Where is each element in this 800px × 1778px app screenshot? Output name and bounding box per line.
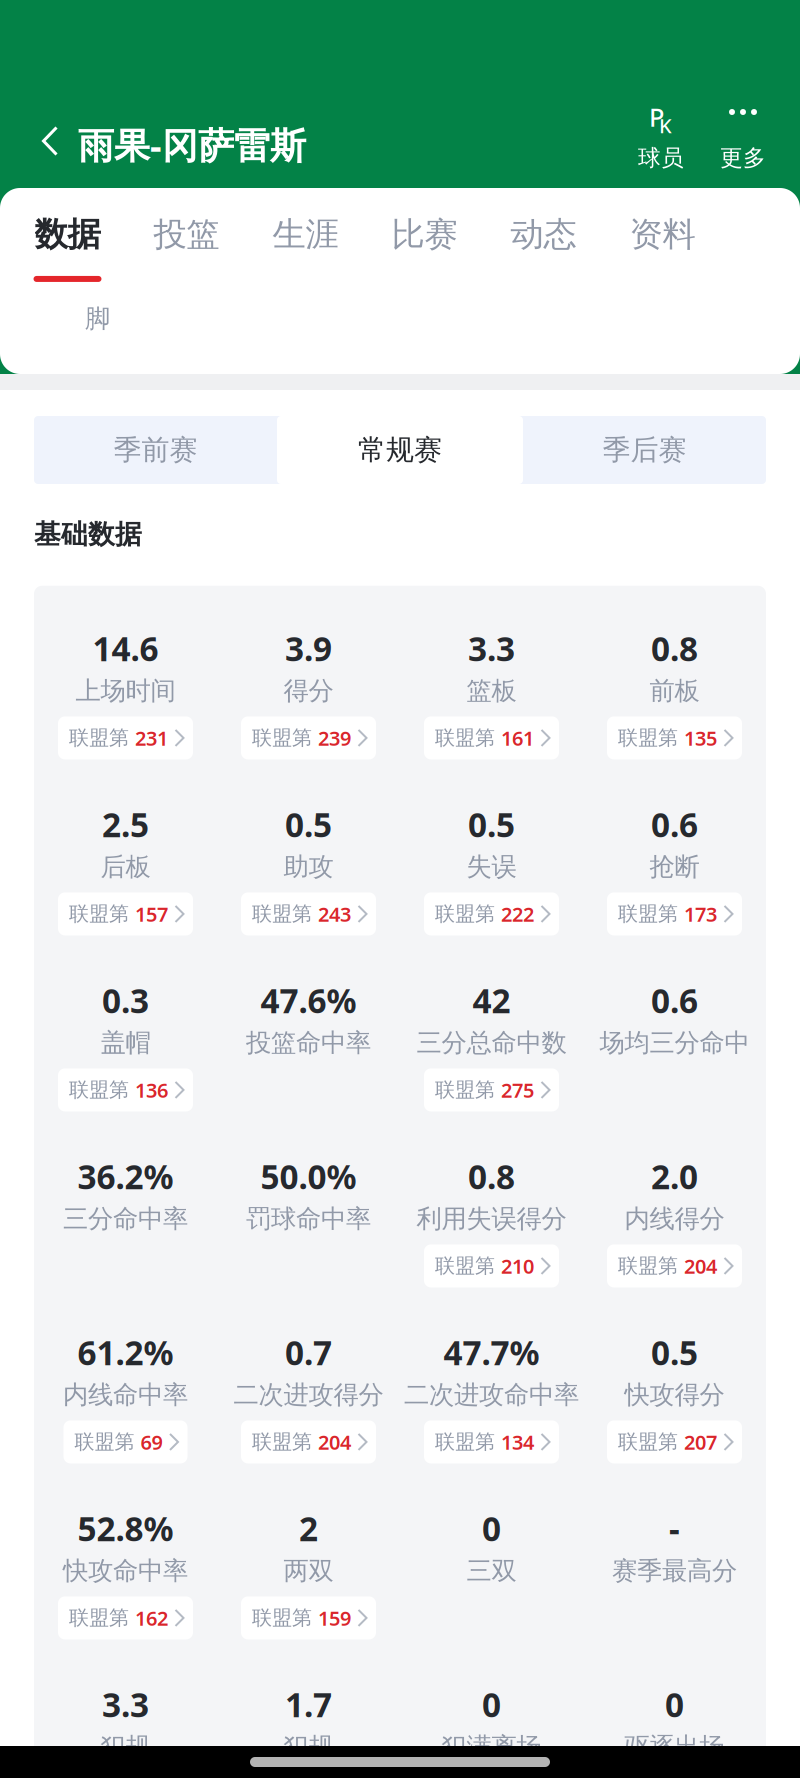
staticText: 联盟第	[74, 1430, 134, 1454]
staticText: 雨果-冈萨雷斯	[78, 121, 306, 169]
staticText: 275	[501, 1077, 534, 1103]
staticText: 161	[501, 725, 534, 751]
staticText: 投篮	[153, 214, 219, 255]
staticText: 联盟第	[618, 726, 678, 750]
staticText: P	[649, 100, 664, 134]
staticText: 42	[472, 978, 510, 1022]
button[interactable]: 联盟第	[424, 716, 559, 759]
button[interactable]: 生涯	[246, 188, 365, 281]
button[interactable]: 联盟第	[607, 1244, 742, 1287]
staticText: 36.2%	[77, 1154, 173, 1198]
staticText: 0.3	[102, 978, 149, 1022]
staticText: 134	[501, 1429, 534, 1455]
button[interactable]: 投篮	[127, 188, 246, 281]
staticText: 3.3	[102, 1682, 149, 1726]
button[interactable]: 联盟第	[58, 1596, 193, 1639]
button[interactable]: 联盟第	[241, 1420, 376, 1463]
staticText: 239	[318, 725, 351, 751]
staticText: 利用失误得分	[416, 1203, 566, 1234]
staticText: 快攻得分	[624, 1379, 724, 1410]
staticText: 3.9	[285, 626, 332, 670]
staticText: 三分总命中数	[416, 1027, 566, 1058]
staticText: 失误	[466, 851, 516, 882]
button[interactable]: 联盟第	[58, 716, 193, 759]
button[interactable]: Back	[0, 100, 78, 188]
staticText: 快攻命中率	[63, 1555, 188, 1586]
staticText: 3.3	[468, 626, 515, 670]
button[interactable]: 联盟第	[607, 716, 742, 759]
staticText: 222	[501, 901, 534, 927]
staticText: 0	[482, 1682, 501, 1726]
staticText: 联盟第	[252, 726, 312, 750]
staticText: 前板	[649, 675, 699, 706]
staticText: 159	[318, 1605, 351, 1631]
staticText: 204	[318, 1429, 351, 1455]
button[interactable]: 联盟第	[424, 892, 559, 935]
staticText: 常规赛	[358, 433, 442, 467]
staticText: 1.7	[285, 1682, 332, 1726]
staticText: 生涯	[272, 214, 338, 255]
staticText: 联盟第	[435, 1430, 495, 1454]
staticText: 二次进攻命中率	[404, 1379, 579, 1410]
button[interactable]: 联盟第	[58, 892, 193, 935]
staticText: 赛季最高分	[612, 1555, 737, 1586]
staticText: 2.5	[102, 802, 149, 846]
staticText: 基础数据	[34, 518, 142, 551]
staticText: 脚	[85, 303, 110, 334]
button[interactable]: 季后赛	[523, 418, 766, 482]
button[interactable]: 资料	[603, 188, 722, 281]
staticText: 联盟第	[69, 1078, 129, 1102]
staticText: 243	[318, 901, 351, 927]
staticText: 47.6%	[260, 978, 356, 1022]
staticText: 231	[135, 725, 168, 751]
button[interactable]: 数据	[8, 188, 127, 281]
staticText: 资料	[629, 214, 695, 255]
staticText: 两双	[283, 1555, 333, 1586]
staticText: 0.5	[651, 1330, 698, 1374]
staticText: 2	[299, 1506, 318, 1550]
staticText: 0.8	[468, 1154, 515, 1198]
button[interactable]: 常规赛	[277, 416, 523, 484]
staticText: 0	[665, 1682, 684, 1726]
staticText: 210	[501, 1253, 534, 1279]
staticText: 三双	[466, 1555, 516, 1586]
staticText: 联盟第	[252, 1430, 312, 1454]
button[interactable]: 联盟第	[58, 1068, 193, 1111]
staticText: 162	[135, 1605, 168, 1631]
button[interactable]: 联盟第	[241, 1596, 376, 1639]
button[interactable]: 联盟第	[63, 1420, 187, 1463]
staticText: 联盟第	[69, 902, 129, 926]
staticText: 14.6	[92, 626, 158, 670]
staticText: 犯规	[100, 1731, 150, 1762]
button[interactable]: 比赛	[365, 188, 484, 281]
staticText: 联盟第	[435, 726, 495, 750]
button[interactable]: 联盟第	[241, 716, 376, 759]
staticText: 0	[482, 1506, 501, 1550]
button[interactable]: 动态	[484, 188, 603, 281]
staticText: 上场时间	[75, 675, 175, 706]
button[interactable]: 更多	[702, 100, 784, 188]
button[interactable]: 联盟第	[607, 1420, 742, 1463]
staticText: 173	[684, 901, 717, 927]
staticText: 联盟第	[618, 1254, 678, 1278]
button[interactable]: 联盟第	[424, 1068, 559, 1111]
staticText: 0.5	[285, 802, 332, 846]
staticText: 季前赛	[113, 433, 197, 467]
button[interactable]: 联盟第	[607, 892, 742, 935]
button[interactable]: 联盟第	[424, 1244, 559, 1287]
button[interactable]: P	[620, 100, 702, 188]
button[interactable]: 联盟第	[241, 892, 376, 935]
staticText: 联盟第	[435, 1254, 495, 1278]
staticText: 69	[140, 1429, 162, 1455]
staticText: 157	[135, 901, 168, 927]
staticText: 135	[684, 725, 717, 751]
staticText: 罚球命中率	[246, 1203, 371, 1234]
staticText: 47.7%	[443, 1330, 539, 1374]
staticText: 50.0%	[260, 1154, 356, 1198]
staticText: 球员	[638, 144, 684, 172]
staticText: 204	[684, 1253, 717, 1279]
staticText: 场均三分命中	[599, 1027, 749, 1058]
button[interactable]: 季前赛	[34, 418, 277, 482]
staticText: 投篮命中率	[246, 1027, 371, 1058]
button[interactable]: 联盟第	[424, 1420, 559, 1463]
